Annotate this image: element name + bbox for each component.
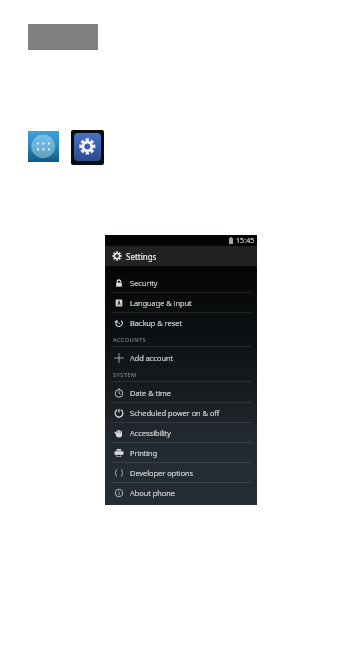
button[interactable]: Security [105,273,257,293]
button[interactable]: Developer options [105,463,257,483]
staticText: ACCOUNTS [113,336,147,344]
staticText: SYSTEM [113,371,137,379]
button[interactable]: Printing [105,443,257,463]
button[interactable]: Settings [105,246,257,266]
button[interactable]: Settings [71,130,104,165]
staticText: Date & time [130,388,171,398]
button[interactable]: Backup & reset [105,313,257,333]
button[interactable]: About phone [105,483,257,503]
staticText: Add account [130,353,174,363]
button[interactable]: Accessibility [105,423,257,443]
staticText: Settings [126,251,157,262]
staticText: About phone [130,488,175,498]
staticText: Language & input [130,298,192,308]
button[interactable]: Add account [105,348,257,368]
button[interactable]: Language & input [105,293,257,313]
staticText: 15:45 [236,236,255,246]
button[interactable]: All apps [28,131,59,162]
staticText: Scheduled power on & off [130,408,220,418]
staticText: Developer options [130,468,194,478]
button[interactable]: Date & time [105,383,257,403]
staticText: Printing [130,448,158,458]
staticText: Backup & reset [130,318,183,328]
button[interactable]: Scheduled power on & off [105,403,257,423]
staticText: Security [130,278,158,288]
staticText: Accessibility [130,428,171,438]
